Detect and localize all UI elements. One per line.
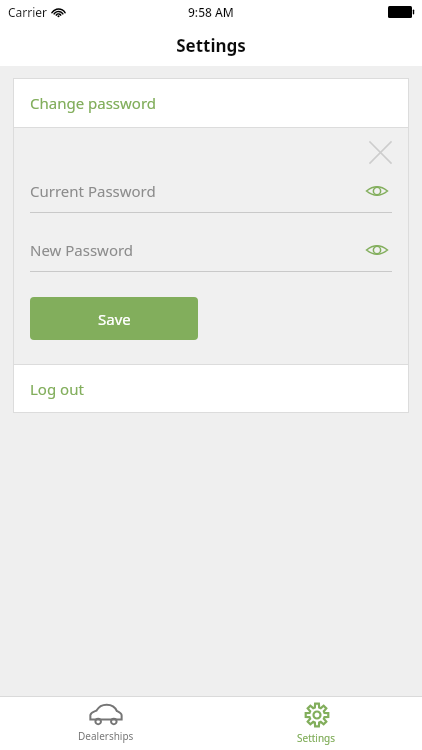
staticText: Carrier: [8, 4, 48, 20]
staticText: Log out: [30, 379, 84, 399]
staticText: Settings: [297, 731, 336, 745]
staticText: Current Password: [30, 181, 362, 201]
button[interactable]: Log out: [13, 365, 409, 413]
staticText: Dealerships: [78, 729, 134, 743]
staticText: New Password: [30, 240, 362, 260]
button[interactable]: Show Current Password: [362, 176, 392, 206]
button[interactable]: Settings: [211, 697, 422, 750]
button[interactable]: Show New Password: [362, 235, 392, 265]
button[interactable]: Dealerships: [0, 697, 211, 750]
staticText: Settings: [176, 34, 246, 57]
staticText: Save: [98, 309, 131, 329]
staticText: Change password: [30, 93, 157, 113]
button[interactable]: Save: [30, 297, 198, 340]
button[interactable]: Change password: [13, 78, 409, 127]
button[interactable]: Close: [363, 135, 397, 169]
staticText: 9:58 AM: [188, 4, 234, 20]
